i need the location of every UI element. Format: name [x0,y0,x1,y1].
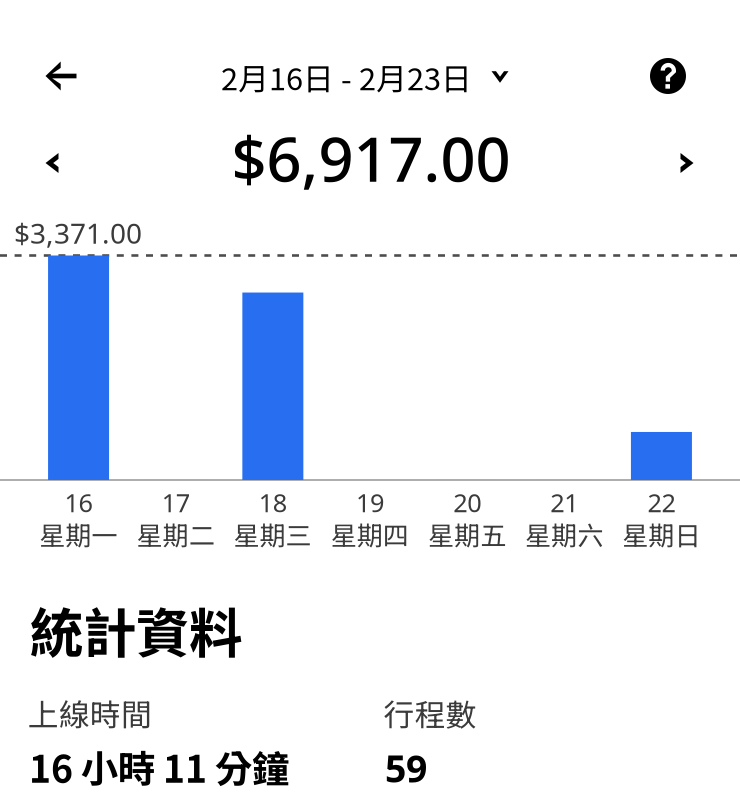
staticText: $3,371.00 [14,214,142,252]
staticText: 2月16日 - 2月23日 [221,55,472,99]
staticText: 上線時間 [28,691,152,735]
staticText: 星期三 [234,515,312,553]
staticText: 星期五 [428,515,506,553]
staticText: 18 [259,486,287,519]
staticText: 17 [162,486,190,519]
staticText: 22 [647,486,675,519]
staticText: 21 [550,486,578,519]
staticText: 19 [356,486,384,519]
button[interactable]: Previous week [25,136,79,190]
button[interactable]: 2月16日 - 2月23日 [160,47,560,107]
staticText: $6,917.00 [231,117,510,199]
button[interactable]: Help [640,48,696,104]
button[interactable]: Back [27,46,95,106]
staticText: 16 [65,486,93,519]
staticText: 星期日 [622,515,700,553]
staticText: 統計資料 [30,591,242,668]
staticText: 16 小時 11 分鐘 [29,739,289,794]
staticText: 星期六 [525,515,603,553]
staticText: 星期二 [137,515,215,553]
staticText: 59 [385,743,427,793]
button[interactable]: Next week [660,136,714,190]
staticText: 星期一 [40,515,118,553]
staticText: 行程數 [383,691,476,735]
staticText: 星期四 [331,515,409,553]
staticText: 20 [453,486,481,519]
